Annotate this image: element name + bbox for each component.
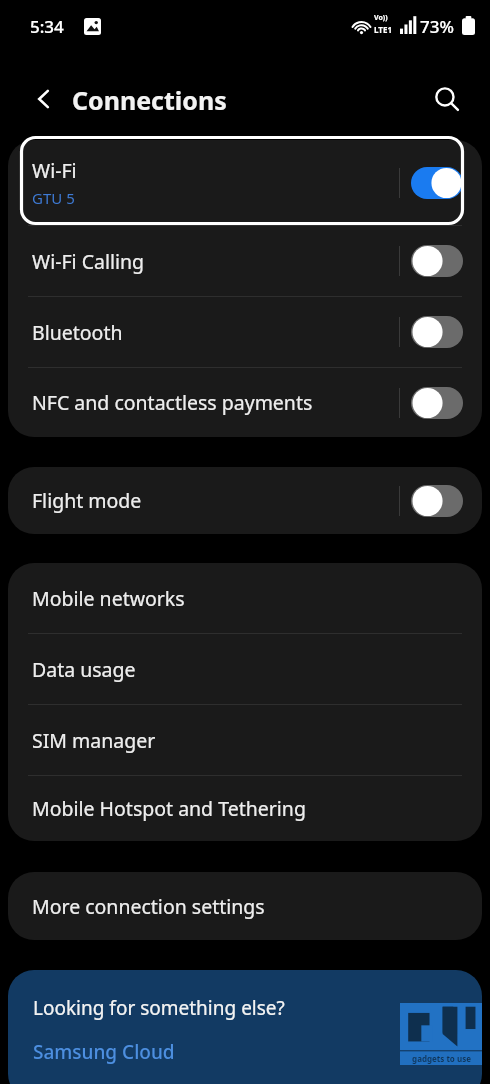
staticText: GTU 5 bbox=[32, 188, 75, 208]
button[interactable]: Wi-Fi bbox=[8, 140, 482, 225]
button[interactable]: NFC and contactless payments bbox=[8, 368, 482, 437]
staticText: SIM manager bbox=[32, 727, 156, 754]
staticText: Wi-Fi bbox=[32, 157, 77, 184]
button[interactable]: Wi-Fi Calling bbox=[8, 226, 482, 296]
button[interactable]: Flight mode off bbox=[411, 485, 463, 517]
button[interactable]: Bluetooth off bbox=[411, 316, 463, 348]
button[interactable]: Flight mode bbox=[8, 467, 482, 534]
button[interactable]: Looking for something else? bbox=[8, 970, 482, 1084]
staticText: Connections bbox=[72, 83, 227, 117]
button[interactable]: Bluetooth bbox=[8, 297, 482, 367]
button[interactable]: Mobile networks bbox=[8, 563, 482, 633]
staticText: More connection settings bbox=[32, 893, 265, 920]
button[interactable]: SIM manager bbox=[8, 705, 482, 775]
button[interactable]: Back bbox=[20, 75, 68, 123]
button[interactable]: Search bbox=[423, 75, 471, 123]
staticText: Vo)) bbox=[374, 13, 388, 23]
button[interactable]: Data usage bbox=[8, 634, 482, 704]
button[interactable]: Mobile Hotspot and Tethering bbox=[8, 776, 482, 841]
staticText: 5:34 bbox=[30, 15, 64, 38]
staticText: Mobile networks bbox=[32, 585, 185, 612]
staticText: NFC and contactless payments bbox=[32, 389, 313, 416]
staticText: Samsung Cloud bbox=[33, 1039, 175, 1065]
staticText: Looking for something else? bbox=[33, 995, 285, 1021]
staticText: Flight mode bbox=[32, 487, 142, 514]
staticText: 73% bbox=[420, 15, 454, 38]
staticText: Wi-Fi Calling bbox=[32, 248, 145, 275]
button[interactable]: More connection settings bbox=[8, 872, 482, 940]
staticText: LTE1 bbox=[374, 24, 392, 35]
button[interactable]: Wi-Fi Calling off bbox=[411, 245, 463, 277]
staticText: Data usage bbox=[32, 656, 136, 683]
staticText: Mobile Hotspot and Tethering bbox=[32, 795, 306, 822]
staticText: gadgets to use bbox=[412, 1053, 471, 1064]
button[interactable]: NFC and contactless payments off bbox=[411, 387, 463, 419]
button[interactable]: Wi-Fi on bbox=[411, 167, 463, 199]
staticText: Bluetooth bbox=[32, 319, 123, 346]
